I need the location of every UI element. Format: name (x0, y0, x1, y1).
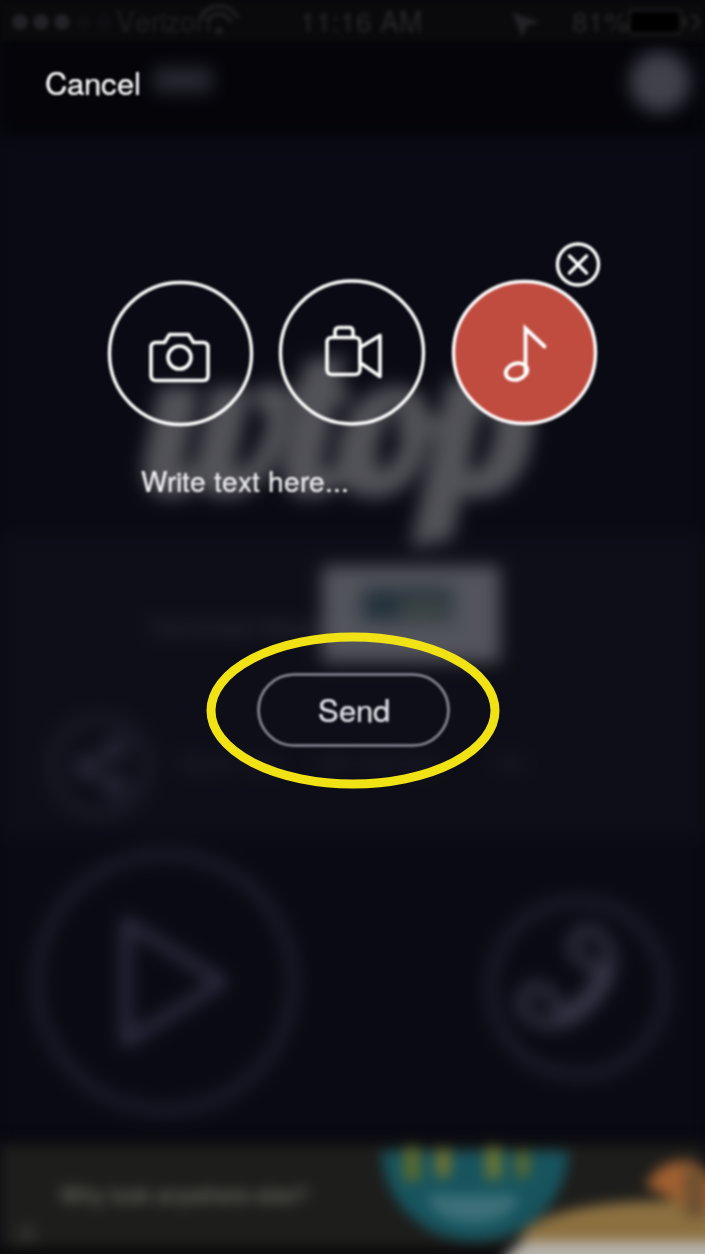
button[interactable]: Cancel (30, 56, 170, 108)
button[interactable]: Advertisement (0, 1139, 705, 1254)
button[interactable]: Take photo (109, 282, 252, 425)
button[interactable]: Write text here... (132, 462, 362, 506)
button[interactable]: Close (557, 244, 598, 285)
button[interactable]: Record audio (453, 281, 596, 424)
button[interactable]: Record video (280, 281, 423, 424)
button[interactable]: Send (258, 674, 449, 746)
